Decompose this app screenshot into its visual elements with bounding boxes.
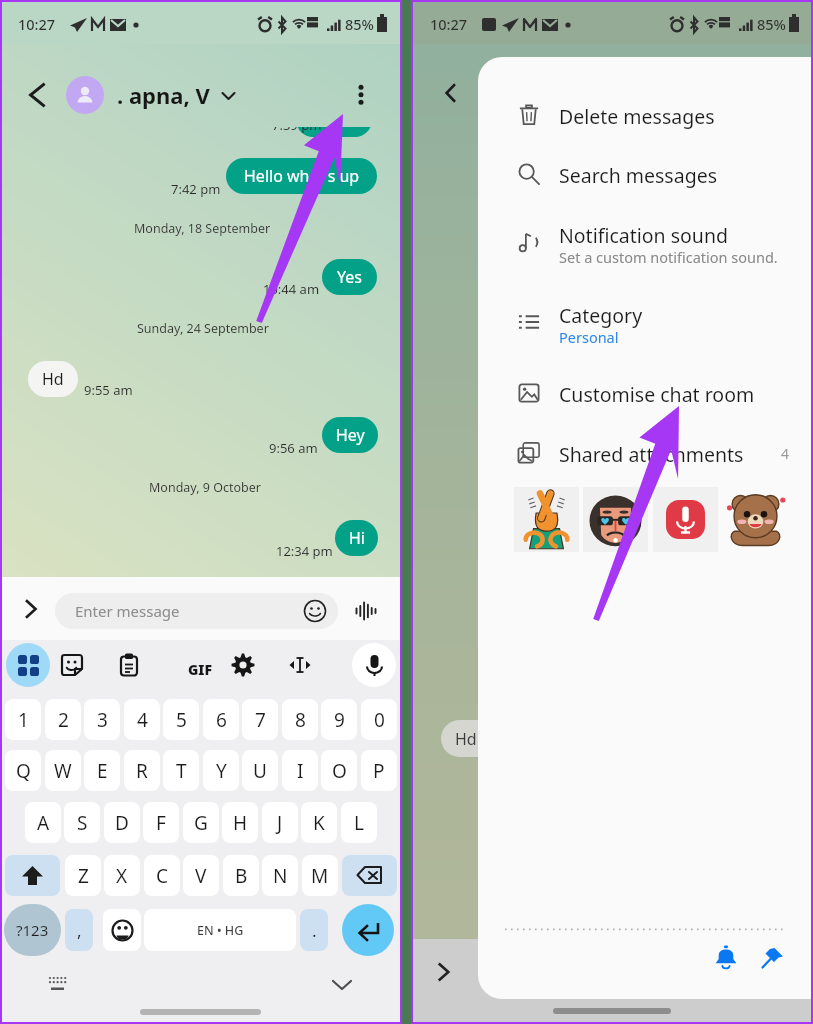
button[interactable]: Attachment	[583, 487, 648, 552]
button[interactable]: Back	[21, 79, 53, 111]
staticText: Q	[16, 758, 31, 784]
button[interactable]: Enter	[342, 904, 394, 956]
button[interactable]: Backspace	[342, 855, 397, 896]
button[interactable]: C	[144, 855, 180, 896]
button[interactable]: X	[104, 855, 140, 896]
button[interactable]: GIF	[182, 651, 218, 687]
button[interactable]: U	[242, 750, 278, 791]
staticText: 9:55 am	[84, 381, 133, 399]
staticText: X	[116, 863, 128, 889]
button[interactable]: D	[104, 802, 140, 843]
button[interactable]: 3	[84, 699, 120, 740]
staticText: 7:42 pm	[171, 180, 221, 198]
button[interactable]: Voice input	[350, 595, 382, 627]
button[interactable]: ,	[65, 909, 93, 951]
button[interactable]: P	[361, 750, 397, 791]
button[interactable]: Y	[203, 750, 239, 791]
button[interactable]: I	[282, 750, 318, 791]
button[interactable]: EN • HG	[144, 909, 296, 951]
button[interactable]: Text selection	[276, 641, 324, 689]
staticText: M	[311, 863, 329, 889]
button[interactable]: Notifications	[706, 937, 746, 977]
staticText: 9:56 am	[269, 439, 318, 457]
button[interactable]: Expand toolbar	[16, 594, 46, 624]
button[interactable]: F	[143, 802, 179, 843]
button[interactable]: Stickers	[48, 641, 96, 689]
button[interactable]: More options	[344, 78, 378, 112]
button[interactable]: K	[301, 802, 337, 843]
button[interactable]: Emoji	[303, 599, 327, 623]
button[interactable]: Z	[65, 855, 101, 896]
button[interactable]: Attachment	[723, 487, 788, 552]
staticText: K	[313, 810, 325, 836]
button[interactable]: Keyboard modes	[6, 643, 50, 687]
button[interactable]: T	[163, 750, 199, 791]
button[interactable]: 6	[203, 699, 239, 740]
button[interactable]: A	[25, 802, 61, 843]
staticText: 4	[781, 444, 790, 463]
button[interactable]: 7	[242, 699, 278, 740]
button[interactable]: V	[183, 855, 219, 896]
button[interactable]: 5	[163, 699, 199, 740]
button[interactable]: 1	[5, 699, 41, 740]
button[interactable]: 8	[282, 699, 318, 740]
staticText: U	[253, 758, 267, 784]
staticText: Z	[78, 863, 89, 889]
button[interactable]: Hello what's up	[226, 158, 377, 194]
button[interactable]: Delete messages	[478, 91, 813, 139]
button[interactable]: Category	[478, 290, 813, 360]
button[interactable]: 0	[361, 699, 397, 740]
button[interactable]: B	[223, 855, 259, 896]
button[interactable]: M	[302, 855, 338, 896]
button[interactable]: Voice typing	[352, 643, 396, 687]
button[interactable]: R	[124, 750, 160, 791]
staticText: 2	[58, 707, 69, 733]
staticText: A	[37, 810, 50, 836]
button[interactable]: E	[84, 750, 120, 791]
button[interactable]: Shared attachments	[478, 429, 813, 477]
staticText: H	[233, 810, 248, 836]
button[interactable]: Back	[434, 76, 468, 110]
button[interactable]: N	[262, 855, 298, 896]
button[interactable]: Contact avatar	[66, 76, 104, 114]
button[interactable]: Notification sound	[478, 210, 813, 280]
button[interactable]: Hide keyboard	[326, 968, 358, 1000]
button[interactable]: O	[321, 750, 357, 791]
button[interactable]: Search messages	[478, 150, 813, 198]
staticText: .	[312, 919, 317, 942]
button[interactable]: W	[45, 750, 81, 791]
button[interactable]: Hey	[322, 417, 378, 453]
button[interactable]: Yes	[322, 259, 377, 295]
button[interactable]: L	[341, 802, 377, 843]
button[interactable]: Q	[5, 750, 41, 791]
button[interactable]: Attachment	[653, 487, 718, 552]
button[interactable]: Hi	[335, 520, 378, 556]
button[interactable]: Keyboard layout	[42, 968, 74, 1000]
staticText: Hi	[349, 527, 365, 549]
button[interactable]: G	[183, 802, 219, 843]
button[interactable]: 2	[45, 699, 81, 740]
button[interactable]: Emoji	[103, 909, 141, 951]
button[interactable]: Expand	[428, 956, 460, 988]
button[interactable]: H	[222, 802, 258, 843]
button[interactable]: ?123	[4, 904, 61, 956]
staticText: D	[115, 810, 129, 836]
button[interactable]: Customise chat room	[478, 369, 813, 417]
staticText: Category	[559, 302, 643, 329]
button[interactable]: J	[262, 802, 298, 843]
button[interactable]: Clipboard	[105, 641, 153, 689]
button[interactable]: 9	[321, 699, 357, 740]
button[interactable]: Enter message	[55, 593, 338, 629]
button[interactable]: Attachment	[514, 487, 579, 552]
button[interactable]: Pin	[752, 937, 792, 977]
button[interactable]: . apna, V	[117, 74, 237, 116]
staticText: Notification sound	[559, 222, 728, 249]
staticText: 12:34 pm	[276, 542, 333, 560]
button[interactable]: S	[64, 802, 100, 843]
button[interactable]: 4	[124, 699, 160, 740]
button[interactable]: Hd	[28, 361, 78, 397]
button[interactable]: Settings	[219, 641, 267, 689]
staticText: Hd	[42, 368, 64, 390]
button[interactable]: Shift	[5, 855, 60, 896]
button[interactable]: .	[300, 909, 328, 951]
